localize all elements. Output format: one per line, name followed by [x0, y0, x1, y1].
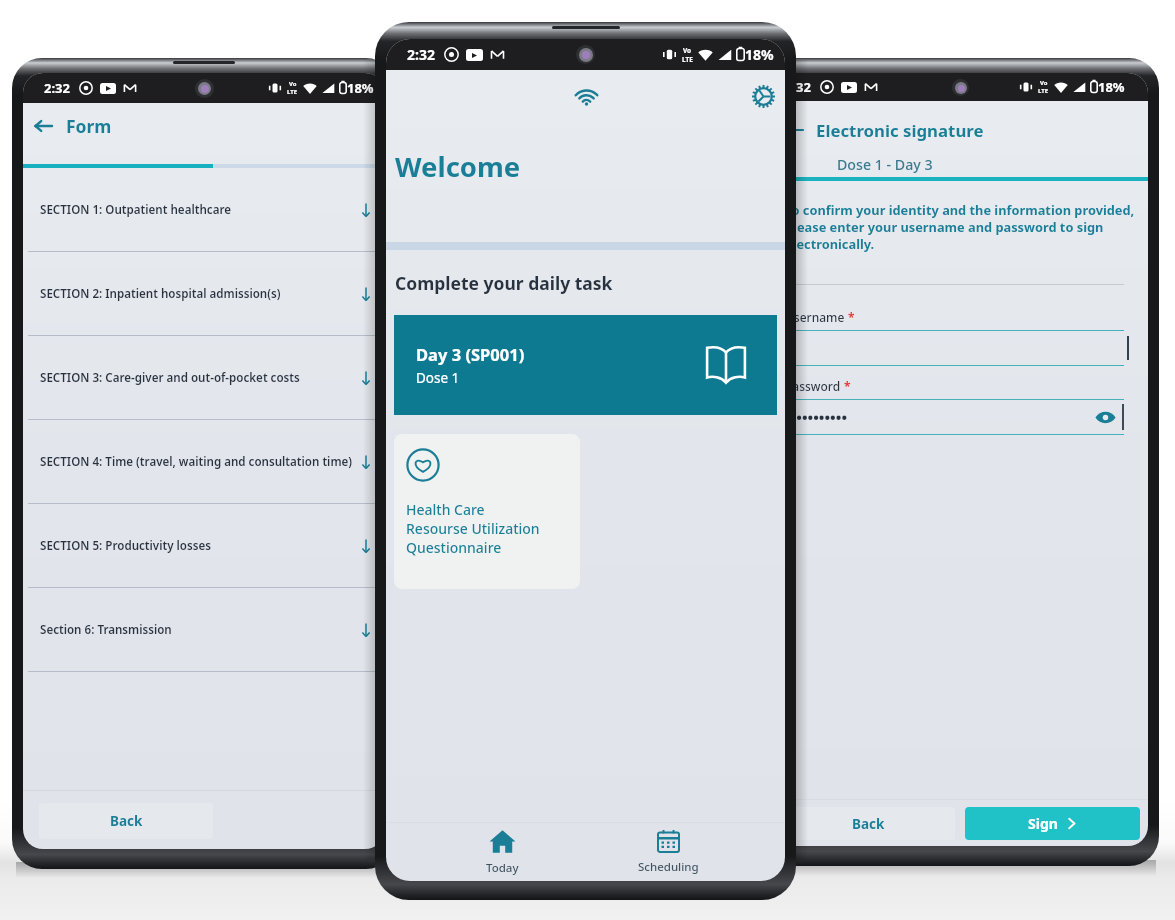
button[interactable]: Back: [28, 111, 58, 141]
staticText: Dose 1 - Day 3: [837, 155, 933, 174]
button[interactable]: Back: [779, 116, 807, 144]
button[interactable]: SECTION 5: Productivity losses: [23, 504, 385, 587]
staticText: Today: [486, 860, 519, 876]
staticText: Username: [785, 309, 848, 325]
button[interactable]: Back: [39, 803, 213, 839]
staticText: Scheduling: [638, 859, 699, 875]
staticText: Dose 1: [416, 369, 460, 387]
button[interactable]: SECTION 1: Outpatient healthcare: [23, 168, 385, 251]
staticText: Vo: [289, 80, 297, 88]
button[interactable]: SECTION 3: Care-giver and out-of-pocket …: [23, 336, 385, 419]
staticText: 2:32: [44, 79, 70, 97]
button[interactable]: Sign: [965, 807, 1140, 840]
staticText: To confirm your identity and the informa…: [785, 201, 1135, 218]
button[interactable]: Show password: [1092, 404, 1118, 430]
staticText: Vo: [683, 46, 692, 55]
staticText: •••••••••••: [785, 407, 848, 427]
button[interactable]: Day 3 (SP001): [394, 315, 777, 415]
staticText: Day 3 (SP001): [416, 343, 525, 365]
staticText: *: [844, 378, 851, 394]
button[interactable]: Back: [781, 807, 955, 840]
staticText: 18%: [745, 45, 774, 64]
staticText: LTE: [1038, 87, 1049, 95]
staticText: Welcome: [395, 148, 521, 185]
button[interactable]: SECTION 2: Inpatient hospital admission(…: [23, 252, 385, 335]
staticText: 2:32: [785, 78, 811, 96]
button[interactable]: Section 6: Transmission: [23, 588, 385, 671]
staticText: Complete your daily task: [395, 271, 613, 295]
staticText: SECTION 3: Care-giver and out-of-pocket …: [40, 370, 359, 386]
staticText: SECTION 2: Inpatient hospital admission(…: [40, 286, 359, 302]
staticText: Electronic signature: [816, 119, 984, 142]
button[interactable]: Scheduling: [585, 823, 751, 881]
staticText: 2:32: [407, 45, 435, 64]
staticText: SECTION 4: Time (travel, waiting and con…: [40, 454, 359, 470]
staticText: Sign: [1028, 814, 1058, 833]
staticText: electronically.: [785, 235, 875, 252]
staticText: Health Care: [406, 500, 485, 519]
staticText: *: [848, 309, 855, 325]
button[interactable]: SECTION 4: Time (travel, waiting and con…: [23, 420, 385, 503]
staticText: Back: [852, 815, 885, 833]
staticText: LTE: [287, 88, 298, 96]
staticText: 18%: [1098, 78, 1125, 96]
staticText: 18%: [347, 79, 374, 97]
staticText: please enter your username and password …: [785, 218, 1104, 235]
staticText: Questionnaire: [406, 538, 502, 557]
staticText: Vo: [1040, 79, 1048, 87]
staticText: Form: [66, 114, 112, 138]
staticText: SECTION 1: Outpatient healthcare: [40, 202, 359, 218]
staticText: Resourse Utilization: [406, 519, 540, 538]
staticText: Password: [785, 378, 844, 394]
staticText: Back: [110, 812, 143, 830]
staticText: LTE: [682, 55, 693, 64]
button[interactable]: Health Care: [394, 434, 580, 589]
staticText: Section 6: Transmission: [40, 622, 359, 638]
button[interactable]: Settings: [746, 79, 780, 113]
button[interactable]: Today: [420, 823, 585, 881]
staticText: SECTION 5: Productivity losses: [40, 538, 359, 554]
